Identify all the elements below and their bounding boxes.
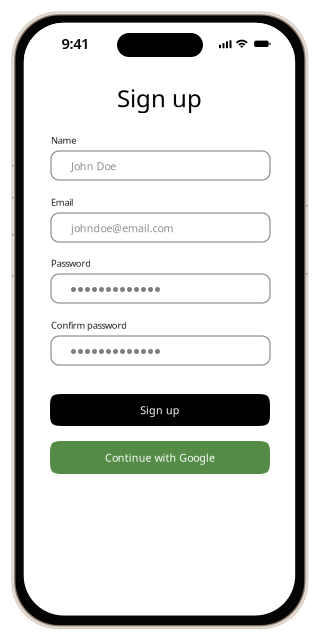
button[interactable]: johndoe@email.com — [51, 213, 270, 242]
staticText: John Doe — [71, 159, 116, 173]
button[interactable] — [51, 274, 270, 303]
staticText: Sign up — [140, 403, 180, 417]
button[interactable] — [51, 336, 270, 365]
staticText: 9:41 — [62, 33, 89, 53]
button[interactable]: Continue with Google — [50, 441, 270, 474]
staticText: Sign up — [117, 82, 202, 114]
button[interactable]: Sign up — [50, 394, 270, 426]
staticText: Email — [51, 196, 73, 208]
staticText: Continue with Google — [105, 450, 215, 465]
staticText: johndoe@email.com — [71, 221, 173, 235]
staticText: Name — [51, 134, 76, 146]
button[interactable]: John Doe — [51, 151, 270, 180]
staticText: Password — [51, 257, 91, 269]
staticText: Confirm password — [51, 319, 127, 331]
